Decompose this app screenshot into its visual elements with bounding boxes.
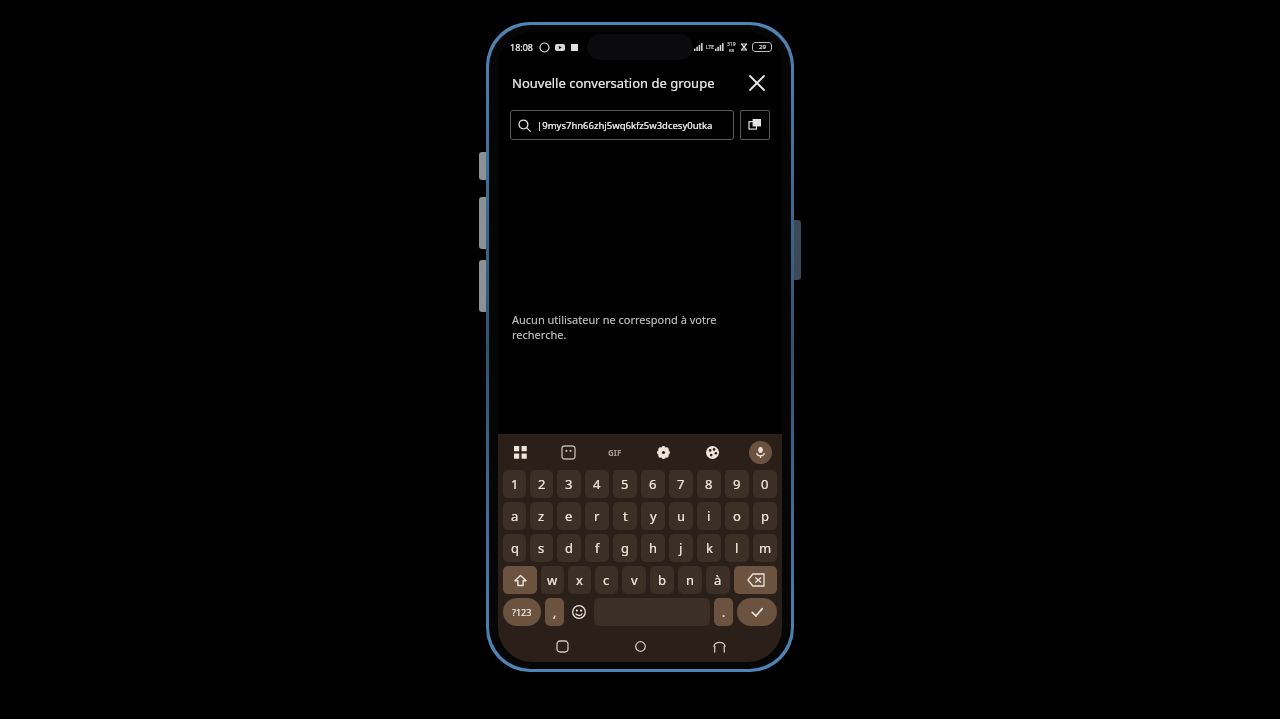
staticText: 18:08 xyxy=(510,41,534,53)
staticText: 5 xyxy=(621,475,629,493)
staticText: e xyxy=(565,507,573,525)
button[interactable]: y xyxy=(641,502,665,530)
button[interactable]: r xyxy=(585,502,609,530)
button[interactable]: o xyxy=(725,502,749,530)
staticText: o xyxy=(733,507,741,525)
button[interactable]: 0 xyxy=(753,470,777,498)
button[interactable]: i xyxy=(697,502,721,530)
staticText: f xyxy=(595,539,600,557)
button[interactable]: Fermer xyxy=(742,68,772,98)
button[interactable]: e xyxy=(557,502,581,530)
button[interactable]: w xyxy=(541,566,564,594)
staticText: 3 xyxy=(565,475,573,493)
button[interactable]: 2 xyxy=(530,470,553,498)
staticText: n xyxy=(686,571,695,589)
button[interactable]: Applications xyxy=(508,440,532,464)
staticText: LTE xyxy=(706,44,715,51)
staticText: s xyxy=(538,539,545,557)
button[interactable]: m xyxy=(753,534,777,562)
button[interactable]: q xyxy=(503,534,526,562)
staticText: 0 xyxy=(761,475,769,493)
button[interactable]: 7 xyxy=(669,470,693,498)
button[interactable]: n xyxy=(678,566,702,594)
button[interactable]: , xyxy=(545,598,564,626)
staticText: l xyxy=(735,539,739,557)
staticText: à xyxy=(714,571,722,589)
staticText: p xyxy=(761,507,769,525)
staticText: 29 xyxy=(759,43,766,51)
staticText: 4 xyxy=(593,475,601,493)
staticText: KB xyxy=(729,48,735,53)
button[interactable]: 3 xyxy=(557,470,581,498)
staticText: r xyxy=(594,507,600,525)
staticText: d xyxy=(565,539,573,557)
staticText: |9mys7hn66zhj5wq6kfz5w3dcesy0utka xyxy=(537,119,713,132)
staticText: u xyxy=(677,507,686,525)
button[interactable]: 8 xyxy=(697,470,721,498)
staticText: v xyxy=(631,571,638,589)
button[interactable]: d xyxy=(557,534,581,562)
button[interactable]: v xyxy=(622,566,646,594)
button[interactable]: 4 xyxy=(585,470,609,498)
button[interactable]: Paramètres xyxy=(651,440,675,464)
button[interactable]: a xyxy=(503,502,526,530)
button[interactable]: j xyxy=(669,534,693,562)
button[interactable]: c xyxy=(595,566,618,594)
button[interactable]: 1 xyxy=(503,470,526,498)
staticText: k xyxy=(706,539,713,557)
staticText: q xyxy=(511,539,519,557)
button[interactable]: |9mys7hn66zhj5wq6kfz5w3dcesy0utka xyxy=(510,110,734,140)
staticText: m xyxy=(759,539,772,557)
button[interactable]: Micro xyxy=(749,441,772,464)
staticText: b xyxy=(658,571,666,589)
staticText: g xyxy=(621,539,629,557)
button[interactable]: z xyxy=(530,502,553,530)
button[interactable]: 6 xyxy=(641,470,665,498)
button[interactable]: Autocollants xyxy=(556,440,580,464)
button[interactable]: Coller xyxy=(740,110,770,140)
staticText: 319 xyxy=(727,41,736,48)
button[interactable]: Accueil xyxy=(625,631,655,661)
staticText: 9 xyxy=(733,475,741,493)
button[interactable]: 9 xyxy=(725,470,749,498)
staticText: w xyxy=(547,571,558,589)
button[interactable]: Supprimer xyxy=(734,566,777,594)
button[interactable]: b xyxy=(650,566,674,594)
staticText: ?123 xyxy=(512,606,532,618)
button[interactable]: Valider xyxy=(737,598,777,626)
button[interactable]: x xyxy=(568,566,591,594)
staticText: c xyxy=(603,571,610,589)
button[interactable]: t xyxy=(613,502,637,530)
staticText: Nouvelle conversation de groupe xyxy=(512,74,715,92)
staticText: 7 xyxy=(677,475,685,493)
staticText: z xyxy=(538,507,545,525)
button[interactable]: u xyxy=(669,502,693,530)
button[interactable]: Emoji xyxy=(568,598,590,626)
button[interactable]: GIF xyxy=(604,441,626,463)
button[interactable]: Thèmes xyxy=(700,440,724,464)
button[interactable]: f xyxy=(585,534,609,562)
staticText: t xyxy=(623,507,628,525)
staticText: 2 xyxy=(538,475,546,493)
button[interactable]: Majuscule xyxy=(503,566,537,594)
staticText: , xyxy=(553,604,557,620)
button[interactable]: k xyxy=(697,534,721,562)
button[interactable]: ?123 xyxy=(503,598,541,626)
staticText: 8 xyxy=(705,475,713,493)
button[interactable]: p xyxy=(753,502,777,530)
staticText: . xyxy=(722,604,726,620)
button[interactable]: . xyxy=(714,598,733,626)
button[interactable]: s xyxy=(530,534,553,562)
button[interactable]: g xyxy=(613,534,637,562)
staticText: 6 xyxy=(649,475,657,493)
staticText: y xyxy=(650,507,657,525)
button[interactable]: h xyxy=(641,534,665,562)
button[interactable]: l xyxy=(725,534,749,562)
button[interactable]: à xyxy=(706,566,730,594)
button[interactable]: Récents xyxy=(547,631,577,661)
button[interactable]: 5 xyxy=(613,470,637,498)
staticText: h xyxy=(649,539,658,557)
button[interactable]: Retour xyxy=(704,631,734,661)
staticText: j xyxy=(679,539,683,557)
